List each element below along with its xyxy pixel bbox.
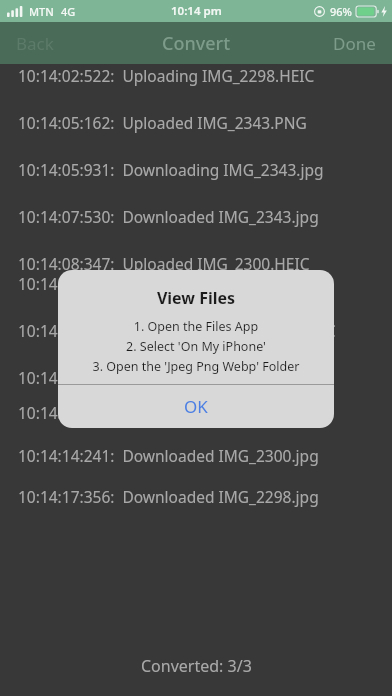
button[interactable]: Back xyxy=(6,26,64,61)
button[interactable]: 10:14:13:002: Downloading IMG_2298.jpg xyxy=(0,395,392,429)
staticText: MTN xyxy=(29,4,54,19)
staticText: 10:14:13:002: Downloading IMG_2298.jpg xyxy=(18,402,324,423)
staticText: Done xyxy=(333,32,376,55)
staticText: Converted: 3/3 xyxy=(141,655,252,677)
button[interactable]: 10:14:11:431: Downloading IMG_2300.HEIC xyxy=(0,313,392,347)
staticText: OK xyxy=(184,395,208,418)
staticText: 4G xyxy=(61,4,76,19)
staticText: 10:14:09:102: Uploading IMG_2300.HEIC xyxy=(18,273,315,294)
staticText: Convert xyxy=(162,31,231,56)
staticText: 2. Select 'On My iPhone' xyxy=(58,338,334,355)
staticText: 10:14:05:162: Uploaded IMG_2343.PNG xyxy=(18,112,307,133)
button[interactable]: 10:14:09:102: Uploading IMG_2300.HEIC xyxy=(0,266,392,300)
staticText: 10:14:14:241: Downloaded IMG_2300.jpg xyxy=(18,445,319,466)
button[interactable]: 10:14:05:931: Downloading IMG_2343.jpg xyxy=(0,152,392,186)
staticText: 10:14:05:931: Downloading IMG_2343.jpg xyxy=(18,159,324,180)
staticText: 1. Open the Files App xyxy=(58,318,334,335)
button[interactable]: 10:14:14:241: Downloaded IMG_2300.jpg xyxy=(0,438,392,472)
staticText: View Files xyxy=(58,287,334,309)
button[interactable]: 10:14:17:356: Downloaded IMG_2298.jpg xyxy=(0,479,392,513)
button[interactable]: 10:14:02:522: Uploading IMG_2298.HEIC xyxy=(0,58,392,92)
staticText: 10:14:17:356: Downloaded IMG_2298.jpg xyxy=(18,486,319,507)
staticText: 10:14:12:118: Downloaded IMG_2343.jpg xyxy=(18,367,319,388)
staticText: 10:14:11:431: Downloading IMG_2300.HEIC xyxy=(18,320,336,341)
button[interactable]: 10:14:05:162: Uploaded IMG_2343.PNG xyxy=(0,105,392,139)
staticText: 3. Open the 'Jpeg Png Webp' Folder xyxy=(58,358,334,375)
button[interactable]: 10:14:12:118: Downloaded IMG_2343.jpg xyxy=(0,360,392,394)
staticText: 10:14:08:347: Uploaded IMG_2300.HEIC xyxy=(18,253,310,274)
staticText: 96% xyxy=(330,4,352,19)
staticText: 10:14:02:522: Uploading IMG_2298.HEIC xyxy=(18,65,315,86)
button[interactable]: Done xyxy=(323,26,386,61)
button[interactable]: 10:14:07:530: Downloaded IMG_2343.jpg xyxy=(0,199,392,233)
other: Rotation lock xyxy=(314,6,325,17)
staticText: 10:14:07:530: Downloaded IMG_2343.jpg xyxy=(18,206,319,227)
button[interactable]: 10:14:08:347: Uploaded IMG_2300.HEIC xyxy=(0,246,392,280)
button[interactable]: OK xyxy=(58,385,334,428)
staticText: 10:14 pm xyxy=(171,3,222,19)
staticText: Back xyxy=(16,32,54,55)
